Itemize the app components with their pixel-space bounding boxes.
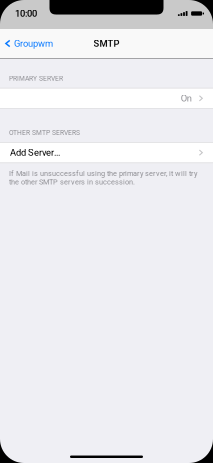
button[interactable]: Groupwm xyxy=(0,29,59,58)
staticText: Add Server... xyxy=(10,147,60,158)
staticText: SMTP xyxy=(93,38,119,49)
staticText: OTHER SMTP SERVERS xyxy=(9,129,80,137)
staticText: On xyxy=(181,93,192,104)
staticText: 10:00 xyxy=(15,8,37,19)
staticText: Groupwm xyxy=(14,38,53,49)
staticText: PRIMARY SERVER xyxy=(9,74,63,82)
button[interactable]: Add Server... xyxy=(0,142,213,163)
button[interactable] xyxy=(0,88,213,109)
staticText: If Mail is unsuccessful using the primar… xyxy=(9,169,197,186)
